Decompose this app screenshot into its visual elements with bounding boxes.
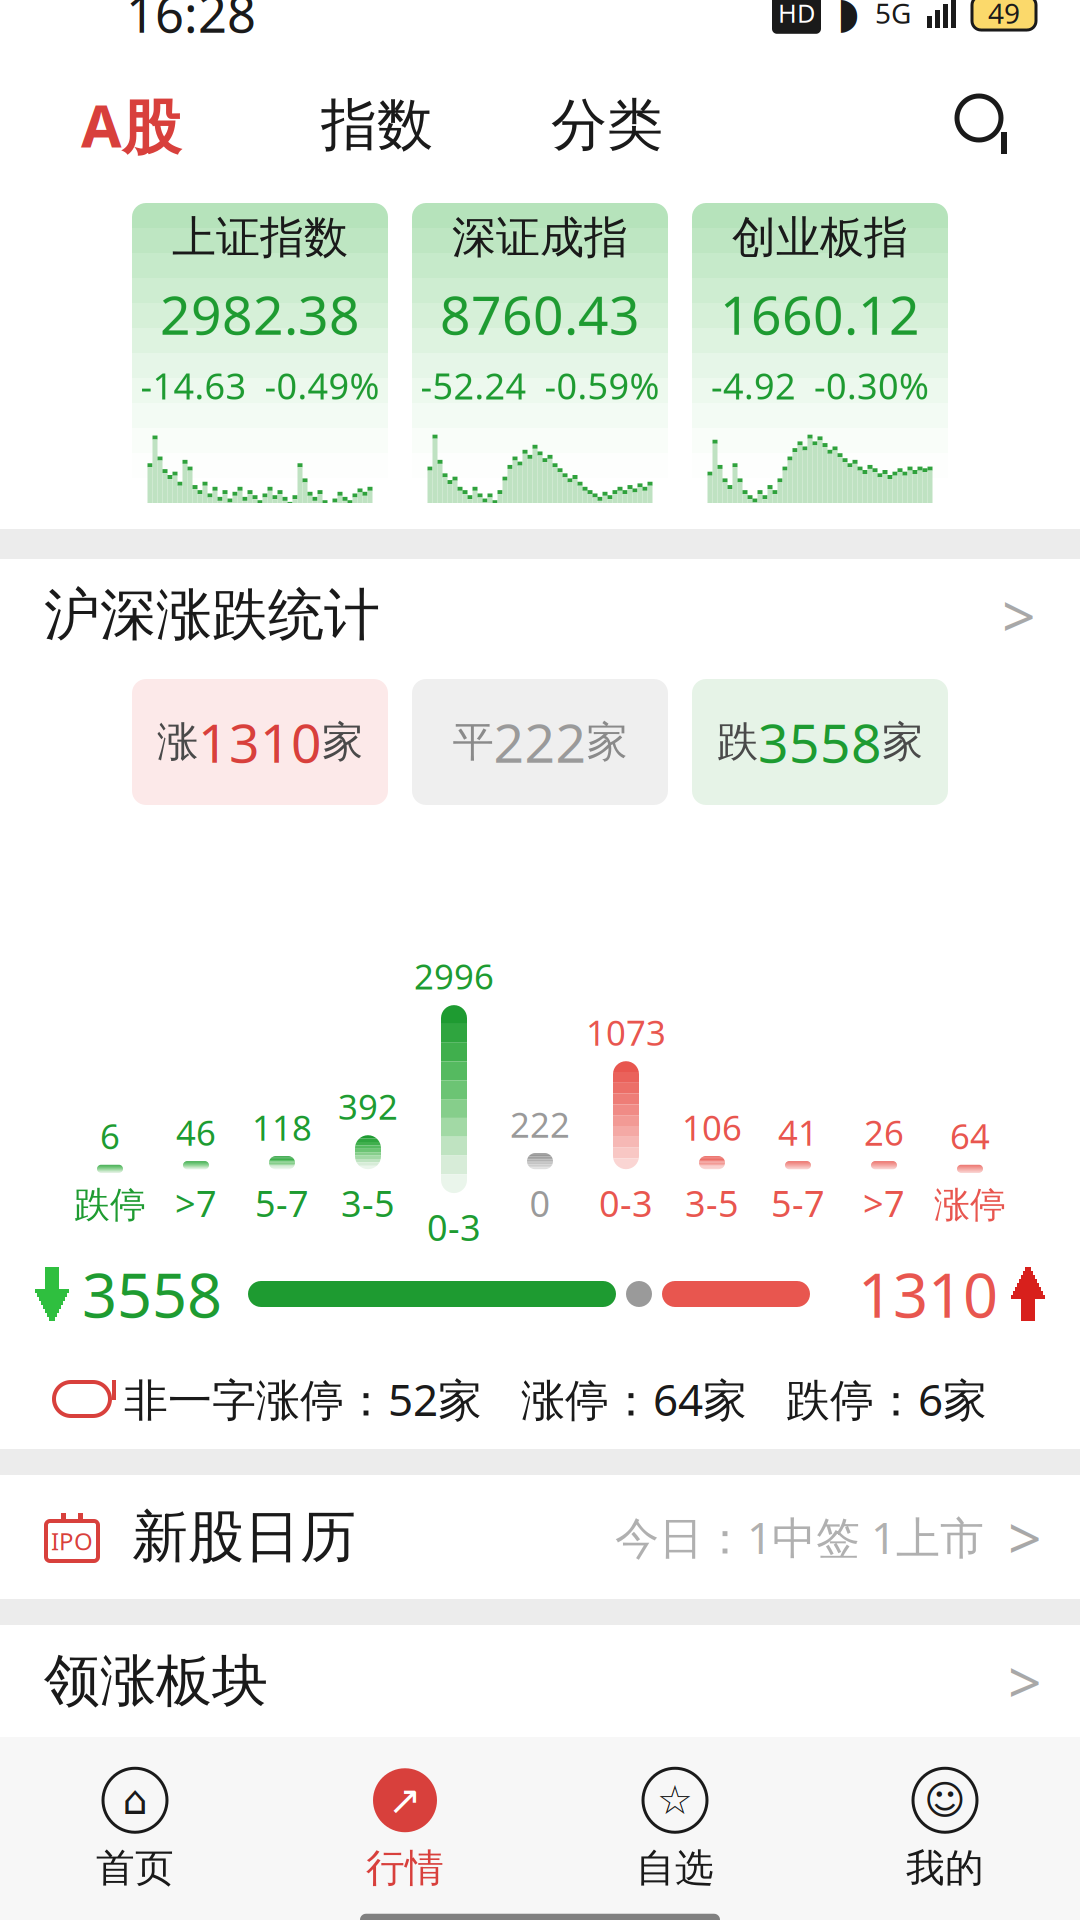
button[interactable]: 搜索 xyxy=(930,77,1042,173)
staticText: >7 xyxy=(863,1179,905,1227)
staticText: 6 xyxy=(100,1113,120,1159)
staticText: 2982.38 xyxy=(160,279,360,349)
staticText: 46 xyxy=(176,1109,216,1155)
staticText: HD xyxy=(778,0,815,30)
staticText: 深证成指 xyxy=(452,211,628,265)
staticText: 26 xyxy=(864,1109,904,1155)
staticText: -0.49% xyxy=(264,361,379,409)
staticText: > xyxy=(1002,576,1036,654)
staticText: 1073 xyxy=(586,1009,666,1055)
staticText: 1310 xyxy=(198,707,322,777)
staticText: 家 xyxy=(586,717,627,767)
staticText: 222 xyxy=(493,707,586,777)
staticText: ↗ xyxy=(388,1778,422,1823)
staticText: 新股日历 xyxy=(132,1503,356,1571)
staticText: 16:28 xyxy=(126,0,256,47)
staticText: 5-7 xyxy=(771,1179,825,1227)
staticText: 1660.12 xyxy=(720,279,920,349)
staticText: -0.30% xyxy=(814,361,929,409)
staticText: >7 xyxy=(175,1179,217,1227)
staticText: 5G xyxy=(875,0,911,32)
staticText: -4.92 xyxy=(711,361,796,409)
staticText: 行情 xyxy=(366,1844,444,1892)
button[interactable]: ☺ xyxy=(810,1768,1080,1892)
button[interactable]: A股 xyxy=(0,77,262,173)
staticText: > xyxy=(1008,1498,1042,1576)
staticText: > xyxy=(1008,1642,1042,1720)
staticText: 跌 xyxy=(717,717,758,767)
button[interactable]: 沪深涨跌统计 xyxy=(0,559,1080,671)
staticText: 我的 xyxy=(906,1844,984,1892)
staticText: 创业板指 xyxy=(732,211,908,265)
staticText: 3558 xyxy=(82,1253,222,1335)
staticText: ☆ xyxy=(657,1778,693,1823)
staticText: ⌂ xyxy=(122,1778,147,1823)
staticText: 领涨板块 xyxy=(44,1647,268,1715)
staticText: 分类 xyxy=(551,91,663,159)
staticText: -0.59% xyxy=(544,361,659,409)
staticText: A股 xyxy=(81,86,181,164)
button[interactable]: 上证指数 xyxy=(132,203,388,503)
staticText: 上证指数 xyxy=(172,211,348,265)
staticText: 跌停 xyxy=(74,1183,146,1227)
staticText: 3-5 xyxy=(341,1179,395,1227)
staticText: 64 xyxy=(950,1113,990,1159)
staticText: ◗ xyxy=(837,0,859,37)
staticText: 49 xyxy=(988,0,1020,32)
staticText: 0-3 xyxy=(427,1203,481,1251)
staticText: 非一字涨停：52家 涨停：64家 跌停：6家 xyxy=(124,1370,987,1428)
staticText: 222 xyxy=(510,1101,570,1147)
button[interactable]: 领涨板块 xyxy=(0,1625,1080,1737)
staticText: 指数 xyxy=(321,91,433,159)
button[interactable]: 分类 xyxy=(492,77,722,173)
staticText: -14.63 xyxy=(140,361,246,409)
staticText: 3-5 xyxy=(685,1179,739,1227)
button[interactable]: 深证成指 xyxy=(412,203,668,503)
staticText: 118 xyxy=(252,1104,312,1150)
staticText: 3558 xyxy=(758,707,882,777)
button[interactable]: 涨 xyxy=(132,679,388,805)
staticText: 家 xyxy=(322,717,363,767)
staticText: 平 xyxy=(452,717,493,767)
button[interactable]: 指数 xyxy=(262,77,492,173)
staticText: 0 xyxy=(529,1179,550,1227)
staticText: 0-3 xyxy=(599,1179,653,1227)
staticText: 家 xyxy=(882,717,923,767)
staticText: 2996 xyxy=(414,953,494,999)
staticText: 8760.43 xyxy=(440,279,640,349)
staticText: 41 xyxy=(778,1109,818,1155)
staticText: 1310 xyxy=(858,1253,998,1335)
button[interactable]: ☆ xyxy=(540,1768,810,1892)
button[interactable]: IPO xyxy=(0,1475,1080,1599)
staticText: 5-7 xyxy=(255,1179,309,1227)
staticText: 沪深涨跌统计 xyxy=(44,581,380,649)
staticText: 392 xyxy=(338,1083,398,1129)
staticText: 106 xyxy=(682,1104,742,1150)
staticText: ☺ xyxy=(924,1778,966,1823)
button[interactable]: ⌂ xyxy=(0,1768,270,1892)
staticText: IPO xyxy=(51,1525,93,1557)
button[interactable]: 创业板指 xyxy=(692,203,948,503)
staticText: -52.24 xyxy=(420,361,526,409)
button[interactable]: 跌 xyxy=(692,679,948,805)
button[interactable]: 平 xyxy=(412,679,668,805)
staticText: 首页 xyxy=(96,1844,174,1892)
staticText: 涨 xyxy=(157,717,198,767)
staticText: 涨停 xyxy=(934,1183,1006,1227)
button[interactable]: ↗ xyxy=(270,1768,540,1892)
staticText: 今日：1中签 1上市 xyxy=(615,1508,984,1566)
staticText: 自选 xyxy=(636,1844,714,1892)
